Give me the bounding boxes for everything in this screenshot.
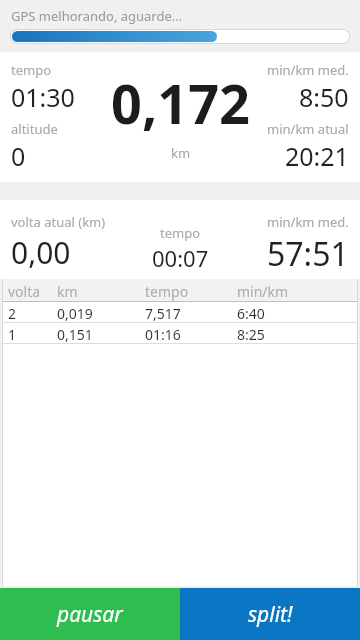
staticText: 8:50	[299, 80, 349, 114]
staticText: split!	[248, 600, 293, 629]
staticText: volta	[8, 282, 41, 301]
staticText: min/km atual	[267, 120, 349, 138]
staticText: pausar	[57, 600, 123, 629]
staticText: 00:07	[152, 243, 209, 273]
staticText: 0	[11, 139, 26, 173]
staticText: 57:51	[267, 232, 349, 276]
staticText: volta atual (km)	[11, 213, 106, 231]
staticText: tempo	[160, 224, 201, 242]
staticText: 0,019	[57, 304, 93, 323]
staticText: 0,00	[11, 232, 71, 273]
staticText: 8:25	[237, 325, 265, 344]
staticText: 7,517	[145, 304, 181, 323]
staticText: GPS melhorando, aguarde...	[11, 7, 183, 25]
staticText: altitude	[11, 120, 58, 138]
staticText: 0,172	[111, 66, 250, 140]
staticText: 20:21	[285, 139, 349, 173]
staticText: 6:40	[237, 304, 265, 323]
staticText: min/km	[237, 282, 289, 301]
staticText: 0,151	[57, 325, 93, 344]
button[interactable]: 1	[3, 323, 357, 343]
button[interactable]: pausar	[0, 588, 180, 640]
staticText: 01:16	[145, 325, 181, 344]
button[interactable]: split!	[180, 588, 360, 640]
staticText: km	[171, 144, 191, 162]
button[interactable]: 2	[3, 302, 357, 322]
staticText: 2	[8, 304, 17, 323]
staticText: min/km med.	[267, 61, 349, 79]
staticText: min/km med.	[267, 213, 349, 231]
staticText: 01:30	[11, 80, 75, 114]
staticText: tempo	[145, 282, 189, 301]
staticText: km	[57, 282, 78, 301]
staticText: 1	[8, 325, 17, 344]
staticText: tempo	[11, 61, 52, 79]
